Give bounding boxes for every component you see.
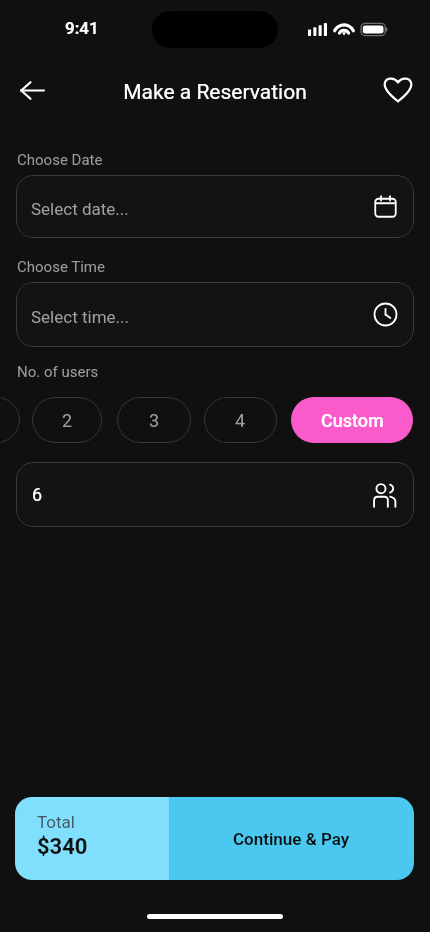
staticText: 9:41 bbox=[65, 18, 99, 38]
staticText: 4 bbox=[235, 410, 246, 431]
staticText: Continue & Pay bbox=[233, 829, 350, 849]
staticText: No. of users bbox=[17, 363, 99, 381]
staticText: Custom bbox=[321, 410, 384, 431]
button[interactable]: Custom bbox=[291, 397, 413, 443]
staticText: Total bbox=[37, 812, 75, 832]
button[interactable]: 2 bbox=[32, 397, 102, 443]
button[interactable]: 4 bbox=[204, 397, 277, 443]
staticText: Choose Date bbox=[17, 151, 103, 169]
button[interactable]: Favorite bbox=[378, 70, 418, 110]
button[interactable]: Total bbox=[15, 797, 169, 880]
staticText: Select date... bbox=[31, 199, 373, 219]
staticText: Make a Reservation bbox=[123, 80, 307, 105]
button[interactable]: 3 bbox=[117, 397, 191, 443]
staticText: Choose Time bbox=[17, 258, 105, 276]
staticText: 2 bbox=[62, 410, 73, 431]
button[interactable]: Back bbox=[12, 70, 52, 110]
staticText: 3 bbox=[149, 410, 160, 431]
button[interactable]: 1 bbox=[0, 397, 20, 443]
button[interactable]: Continue & Pay bbox=[169, 797, 414, 880]
staticText: Select time... bbox=[31, 307, 373, 327]
button[interactable]: Select time... bbox=[16, 282, 414, 347]
button[interactable]: 6 bbox=[16, 462, 414, 527]
staticText: $340 bbox=[37, 834, 88, 860]
staticText: 6 bbox=[32, 484, 372, 505]
button[interactable]: Select date... bbox=[16, 175, 414, 238]
